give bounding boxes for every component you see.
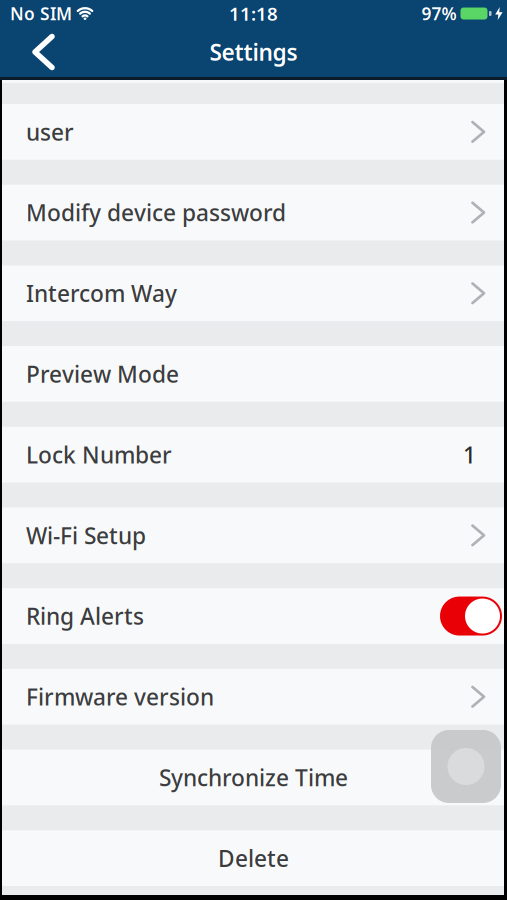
staticText: 97% — [421, 2, 456, 25]
staticText: Modify device password — [26, 197, 286, 228]
staticText: Preview Mode — [26, 359, 179, 389]
staticText: Lock Number — [26, 440, 172, 470]
button[interactable]: Wi-Fi Setup — [0, 507, 507, 563]
staticText: Intercom Way — [26, 278, 177, 308]
button[interactable] — [0, 36, 72, 67]
button[interactable]: Modify device password — [0, 185, 507, 240]
staticText: Synchronize Time — [159, 762, 348, 792]
staticText: 1 — [463, 440, 476, 470]
button[interactable]: Synchronize Time — [0, 750, 507, 805]
staticText: Wi-Fi Setup — [26, 520, 146, 550]
staticText: user — [26, 117, 74, 147]
staticText: Settings — [209, 37, 297, 67]
button[interactable] — [431, 730, 501, 803]
button[interactable]: user — [0, 104, 507, 160]
staticText: 11:18 — [229, 1, 278, 26]
button[interactable]: Delete — [0, 830, 507, 886]
button[interactable]: Preview Mode — [0, 346, 507, 402]
button[interactable]: Intercom Way — [0, 265, 507, 321]
staticText: Ring Alerts — [26, 601, 144, 631]
button[interactable] — [440, 597, 502, 636]
staticText: Delete — [218, 843, 289, 873]
button[interactable]: Firmware version — [0, 669, 507, 725]
staticText: No SIM — [10, 2, 72, 25]
staticText: Firmware version — [26, 682, 214, 712]
